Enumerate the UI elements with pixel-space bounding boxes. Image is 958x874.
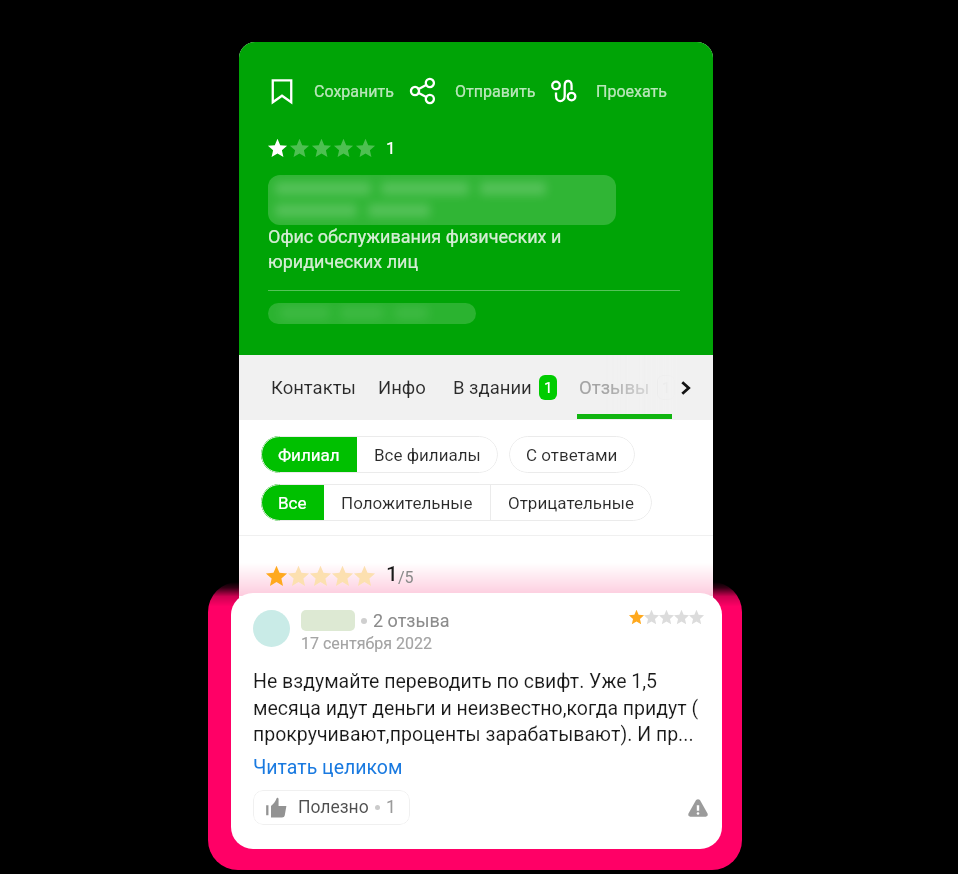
button[interactable]: Отзывы xyxy=(579,375,675,400)
staticText: Контакты xyxy=(271,377,356,399)
button[interactable]: Route xyxy=(550,77,667,105)
button[interactable]: Save xyxy=(268,77,394,105)
button[interactable]: С ответами xyxy=(509,436,635,473)
staticText: Филиал xyxy=(278,445,340,465)
staticText: 2 отзыва xyxy=(373,610,450,631)
staticText: 17 сентября 2022 xyxy=(301,634,432,653)
staticText: Отрицательные xyxy=(508,493,635,513)
other: Route xyxy=(550,77,578,105)
staticText: Проехать xyxy=(596,82,667,101)
button[interactable]: Share xyxy=(409,77,536,105)
staticText: Сохранить xyxy=(314,82,394,101)
staticText: Отзывы xyxy=(579,377,650,399)
button[interactable]: Филиал xyxy=(261,436,357,473)
button[interactable]: Читать целиком xyxy=(253,756,403,779)
staticText: Отправить xyxy=(455,82,536,101)
staticText: Полезно xyxy=(298,797,369,818)
button[interactable]: Все xyxy=(261,484,324,521)
staticText: С ответами xyxy=(526,445,618,465)
staticText: Все филиалы xyxy=(374,445,481,465)
staticText: Положительные xyxy=(341,493,473,513)
staticText: 1 xyxy=(544,379,553,397)
button[interactable]: В здании xyxy=(453,375,557,400)
other: Save xyxy=(268,77,296,105)
button[interactable]: Отрицательные xyxy=(491,484,652,521)
staticText: 1 xyxy=(386,562,398,587)
button[interactable]: Положительные xyxy=(324,484,490,521)
button[interactable]: Все филиалы xyxy=(357,436,498,473)
button[interactable]: Контакты xyxy=(271,377,356,399)
button[interactable]: More tabs xyxy=(671,374,699,402)
staticText: Читать целиком xyxy=(253,756,403,779)
staticText: Не вздумайте переводить по свифт. Уже 1,… xyxy=(253,670,699,745)
button[interactable]: Полезно xyxy=(253,790,410,825)
button[interactable]: 2 отзыва xyxy=(231,593,722,849)
other: Share xyxy=(409,77,437,105)
staticText: 1 xyxy=(386,138,396,158)
staticText: В здании xyxy=(453,377,532,399)
button[interactable]: Инфо xyxy=(378,377,426,399)
staticText: 1 xyxy=(386,797,396,818)
staticText: Инфо xyxy=(378,377,426,399)
staticText: Офис обслуживания физических и юридическ… xyxy=(268,226,562,272)
staticText: Все xyxy=(278,493,307,513)
button[interactable]: Report xyxy=(683,793,713,823)
staticText: /5 xyxy=(398,568,414,587)
